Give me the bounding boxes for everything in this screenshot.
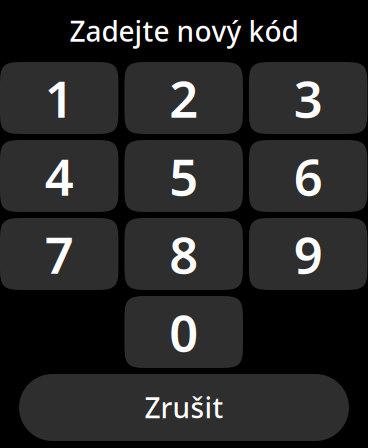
button[interactable]: 5 bbox=[124, 140, 243, 212]
button[interactable]: 2 bbox=[124, 62, 243, 134]
button[interactable]: 1 bbox=[0, 62, 118, 134]
button[interactable]: 6 bbox=[249, 140, 367, 212]
button[interactable]: 4 bbox=[0, 140, 118, 212]
staticText: Zrušit bbox=[144, 389, 223, 426]
staticText: 8 bbox=[169, 220, 198, 288]
staticText: Zadejte nový kód bbox=[69, 12, 298, 50]
staticText: 3 bbox=[294, 64, 323, 132]
button[interactable]: 9 bbox=[249, 218, 367, 290]
button[interactable]: 0 bbox=[124, 296, 243, 368]
staticText: 9 bbox=[294, 220, 323, 288]
button[interactable]: Zrušit bbox=[19, 374, 349, 441]
staticText: 1 bbox=[45, 64, 74, 132]
button[interactable]: 8 bbox=[124, 218, 243, 290]
button[interactable]: 7 bbox=[0, 218, 118, 290]
button[interactable]: 3 bbox=[249, 62, 367, 134]
staticText: 2 bbox=[169, 64, 198, 132]
staticText: 5 bbox=[169, 142, 198, 210]
staticText: 4 bbox=[45, 142, 74, 210]
staticText: 7 bbox=[45, 220, 74, 288]
staticText: 6 bbox=[294, 142, 323, 210]
staticText: 0 bbox=[169, 298, 198, 366]
